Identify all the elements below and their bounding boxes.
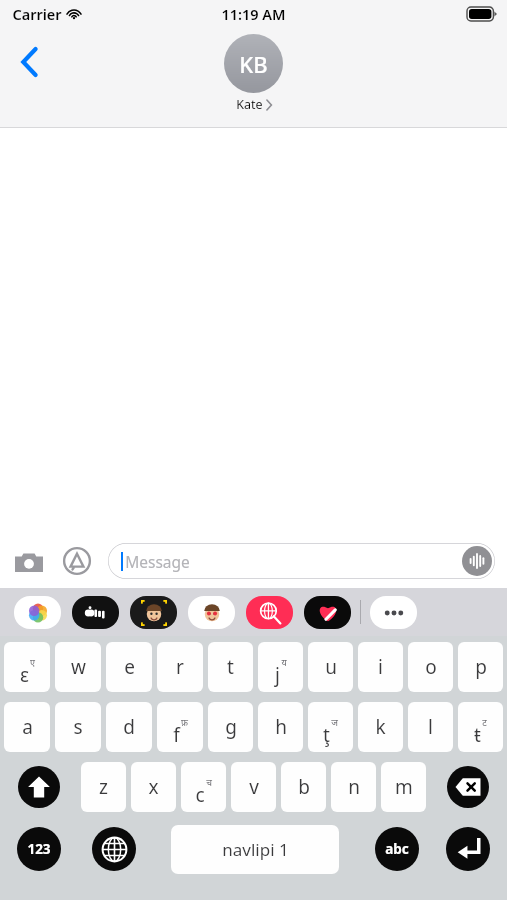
staticText: Kate: [236, 96, 263, 113]
button[interactable]: z: [81, 762, 126, 812]
button[interactable]: t: [208, 642, 253, 692]
staticText: r: [176, 654, 184, 680]
button[interactable]: o: [408, 642, 453, 692]
button[interactable]: Message: [108, 543, 495, 579]
staticText: Carrier: [12, 4, 62, 24]
staticText: च: [206, 776, 212, 788]
staticText: ज: [331, 716, 338, 728]
button[interactable]: k: [358, 702, 403, 752]
staticText: w: [71, 654, 86, 680]
staticText: f: [173, 722, 180, 748]
button[interactable]: w: [55, 642, 101, 692]
button[interactable]: p: [458, 642, 503, 692]
staticText: m: [395, 774, 413, 800]
staticText: Message: [125, 551, 190, 572]
staticText: x: [148, 774, 159, 800]
button[interactable]: Photos: [14, 596, 61, 629]
staticText: p: [475, 654, 487, 680]
staticText: n: [348, 774, 360, 800]
staticText: फ़: [181, 716, 188, 728]
staticText: e: [124, 654, 135, 680]
button[interactable]: Digital Touch: [304, 596, 351, 629]
button[interactable]: ŧ: [458, 702, 503, 752]
button[interactable]: g: [208, 702, 253, 752]
button[interactable]: KB: [224, 34, 283, 113]
staticText: s: [73, 714, 83, 740]
button[interactable]: x: [131, 762, 176, 812]
button[interactable]: m: [381, 762, 426, 812]
button[interactable]: Memoji: [130, 596, 177, 629]
staticText: 11:19 AM: [221, 4, 286, 24]
staticText: ε: [20, 662, 29, 688]
staticText: ट: [482, 716, 487, 728]
button[interactable]: j: [258, 642, 303, 692]
staticText: य: [281, 656, 287, 668]
button[interactable]: Camera: [12, 544, 46, 578]
button[interactable]: f: [157, 702, 203, 752]
staticText: b: [298, 774, 310, 800]
button[interactable]: h: [258, 702, 303, 752]
button[interactable]: i: [358, 642, 403, 692]
staticText: ţ: [323, 722, 330, 748]
staticText: j: [275, 662, 280, 688]
staticText: o: [425, 654, 437, 680]
button[interactable]: Return: [446, 827, 490, 871]
staticText: g: [225, 714, 237, 740]
button[interactable]: u: [308, 642, 353, 692]
staticText: u: [325, 654, 337, 680]
button[interactable]: b: [281, 762, 326, 812]
button[interactable]: ε: [4, 642, 50, 692]
button[interactable]: v: [231, 762, 276, 812]
button[interactable]: Shift: [18, 766, 60, 808]
button[interactable]: d: [106, 702, 152, 752]
staticText: c: [195, 782, 205, 808]
button[interactable]: c: [181, 762, 226, 812]
staticText: k: [375, 714, 386, 740]
button[interactable]: Letters: [375, 827, 419, 871]
button[interactable]: Image search: [246, 596, 293, 629]
staticText: navlipi 1: [222, 838, 289, 861]
staticText: ŧ: [474, 722, 481, 748]
button[interactable]: Numbers: [17, 827, 61, 871]
button[interactable]: s: [55, 702, 101, 752]
staticText: i: [378, 654, 383, 680]
staticText: h: [275, 714, 287, 740]
button[interactable]: a: [4, 702, 50, 752]
button[interactable]: navlipi 1: [171, 825, 339, 874]
staticText: KB: [239, 49, 268, 79]
button[interactable]: Back: [10, 42, 50, 82]
button[interactable]: ţ: [308, 702, 353, 752]
button[interactable]: e: [106, 642, 152, 692]
button[interactable]: Apple Pay: [72, 596, 119, 629]
button[interactable]: Delete: [447, 766, 489, 808]
button[interactable]: n: [331, 762, 376, 812]
staticText: d: [123, 714, 135, 740]
button[interactable]: Audio message: [462, 546, 492, 576]
staticText: ए: [30, 656, 35, 668]
button[interactable]: l: [408, 702, 453, 752]
staticText: l: [428, 714, 433, 740]
staticText: a: [22, 714, 33, 740]
button[interactable]: App Store: [60, 544, 94, 578]
staticText: 123: [27, 840, 51, 858]
button[interactable]: Memoji stickers: [188, 596, 235, 629]
button[interactable]: Change keyboard: [92, 827, 136, 871]
button[interactable]: More: [370, 596, 417, 629]
staticText: t: [227, 654, 234, 680]
staticText: abc: [385, 840, 409, 858]
staticText: z: [99, 774, 108, 800]
staticText: v: [249, 774, 259, 800]
button[interactable]: r: [157, 642, 203, 692]
